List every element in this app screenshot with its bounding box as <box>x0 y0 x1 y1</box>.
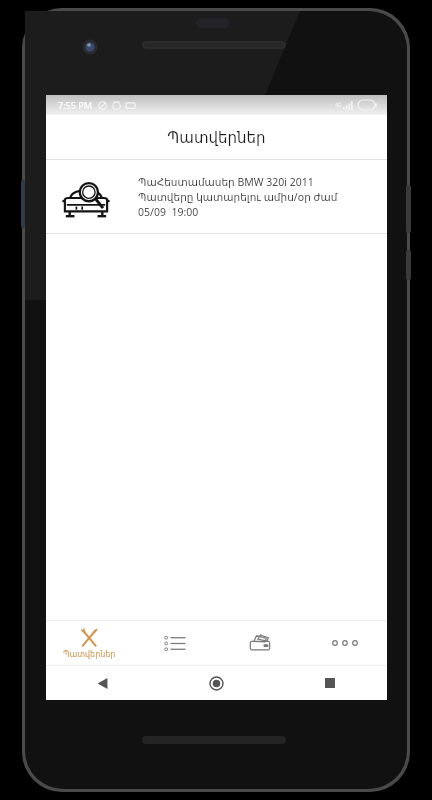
staticText: Պատվերներ <box>63 650 116 659</box>
staticText: 7:55 PM <box>58 99 92 111</box>
staticText: 05/09 19:00 <box>138 205 199 219</box>
button[interactable]: Home <box>159 666 273 700</box>
staticText: Պատվերներ <box>167 129 266 146</box>
button[interactable]: More <box>302 621 387 665</box>
button[interactable]: Wallet <box>217 621 302 665</box>
button[interactable]: List <box>132 621 217 665</box>
staticText: 4G <box>335 102 342 109</box>
button[interactable]: Recent apps <box>273 666 387 700</box>
staticText: ՊաՀեստամասեր BMW 320i 2011 <box>138 175 314 189</box>
button[interactable]: ՊաՀեստամասեր BMW 320i 2011 <box>46 160 387 233</box>
staticText: Պատվերը կատարելու ամիս/օր ժամ <box>138 190 338 204</box>
button[interactable]: Back <box>46 666 159 700</box>
button[interactable]: Պատվերներ <box>46 621 132 665</box>
